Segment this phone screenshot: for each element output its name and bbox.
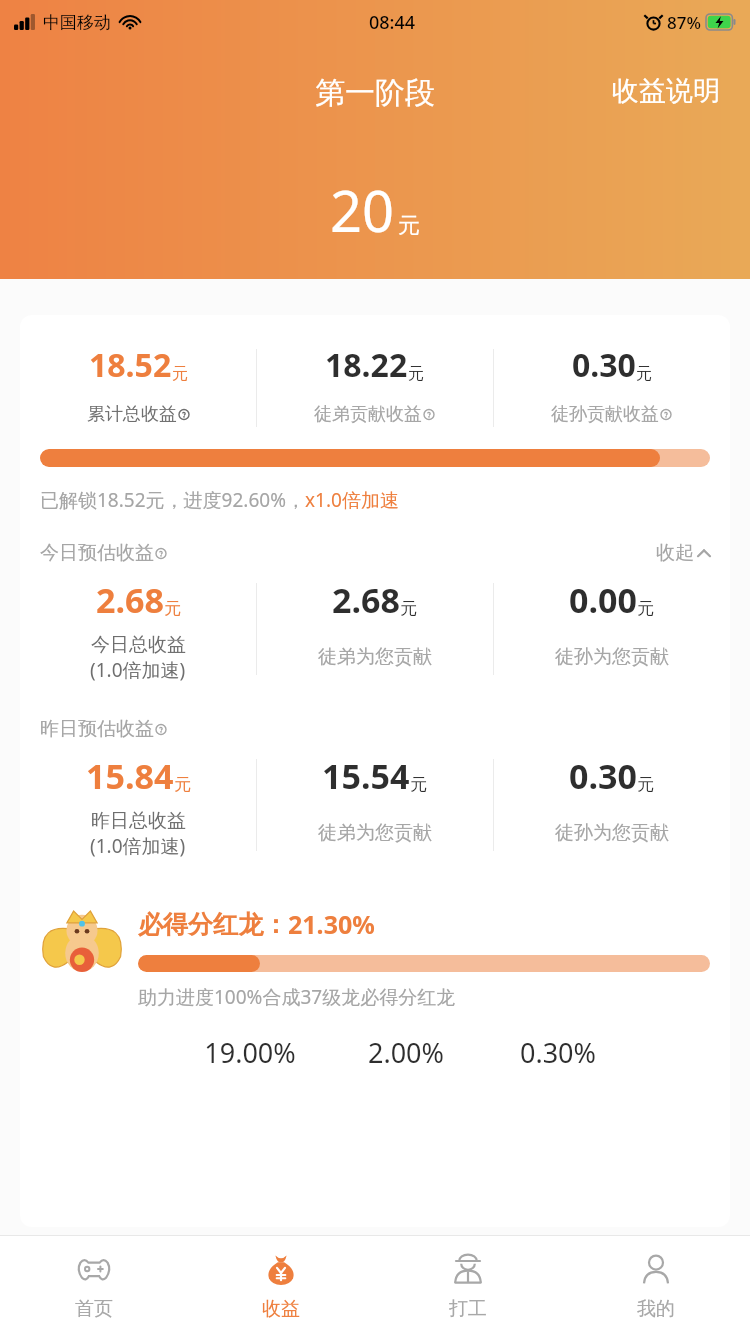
- staticText: 中国移动: [43, 12, 111, 33]
- staticText: 元: [637, 774, 654, 795]
- staticText: 20: [330, 172, 395, 248]
- staticText: 必得分红龙：: [138, 909, 288, 940]
- staticText: 元: [164, 598, 181, 619]
- staticText: 徒弟为您贡献: [318, 821, 432, 845]
- staticText: 我的: [637, 1297, 675, 1321]
- staticText: 元: [410, 774, 427, 795]
- staticText: 0.30%: [482, 1034, 634, 1071]
- staticText: 今日预估收益: [40, 541, 154, 565]
- other: 我的: [636, 1249, 676, 1289]
- staticText: 15.84: [86, 753, 174, 799]
- staticText: 2.00%: [330, 1034, 482, 1071]
- staticText: 徒孙贡献收益: [551, 403, 659, 426]
- staticText: 元: [172, 364, 188, 384]
- button[interactable]: 收益说明: [612, 74, 720, 108]
- staticText: 打工: [449, 1297, 487, 1321]
- staticText: 助力进度100%合成37级龙必得分红龙: [138, 984, 456, 1010]
- staticText: 15.54: [322, 753, 410, 799]
- staticText: 首页: [75, 1297, 113, 1321]
- staticText: 收起: [656, 541, 694, 565]
- other: 首页: [74, 1249, 114, 1289]
- staticText: 18.22: [325, 343, 408, 387]
- button[interactable]: 我的: [562, 1236, 750, 1334]
- staticText: 2.68: [332, 577, 400, 623]
- staticText: 元: [398, 212, 420, 240]
- staticText: 收益: [262, 1297, 300, 1321]
- staticText: 19.00%: [170, 1034, 330, 1071]
- staticText: 徒孙为您贡献: [555, 645, 669, 669]
- staticText: (1.0倍加速): [90, 657, 186, 683]
- button[interactable]: 收起: [656, 541, 710, 565]
- staticText: 已解锁18.52元，进度92.60%，: [40, 487, 305, 513]
- staticText: 徒弟贡献收益: [314, 403, 422, 426]
- staticText: (1.0倍加速): [90, 833, 186, 859]
- button[interactable]: 打工: [374, 1236, 562, 1334]
- button[interactable]: 首页: [0, 1236, 187, 1334]
- button[interactable]: 收益: [187, 1236, 374, 1334]
- staticText: 元: [636, 364, 652, 384]
- staticText: 0.00: [569, 577, 637, 623]
- staticText: 2.68: [96, 577, 164, 623]
- staticText: 0.30: [569, 753, 637, 799]
- staticText: 徒弟为您贡献: [318, 645, 432, 669]
- staticText: 徒孙为您贡献: [555, 821, 669, 845]
- staticText: 0.30: [572, 343, 636, 387]
- staticText: 第一阶段: [315, 74, 435, 112]
- staticText: 累计总收益: [87, 403, 177, 426]
- staticText: 昨日预估收益: [40, 717, 154, 741]
- staticText: 元: [400, 598, 417, 619]
- staticText: x1.0倍加速: [305, 487, 399, 513]
- staticText: 87%: [667, 11, 701, 34]
- staticText: 昨日总收益: [91, 809, 186, 833]
- other: 打工: [448, 1249, 488, 1289]
- other: 收益: [261, 1249, 301, 1289]
- staticText: 元: [408, 364, 424, 384]
- staticText: 08:44: [369, 10, 416, 35]
- staticText: 元: [637, 598, 654, 619]
- staticText: 21.30%: [288, 907, 375, 941]
- staticText: 元: [174, 774, 191, 795]
- staticText: 18.52: [89, 343, 172, 387]
- staticText: 今日总收益: [91, 633, 186, 657]
